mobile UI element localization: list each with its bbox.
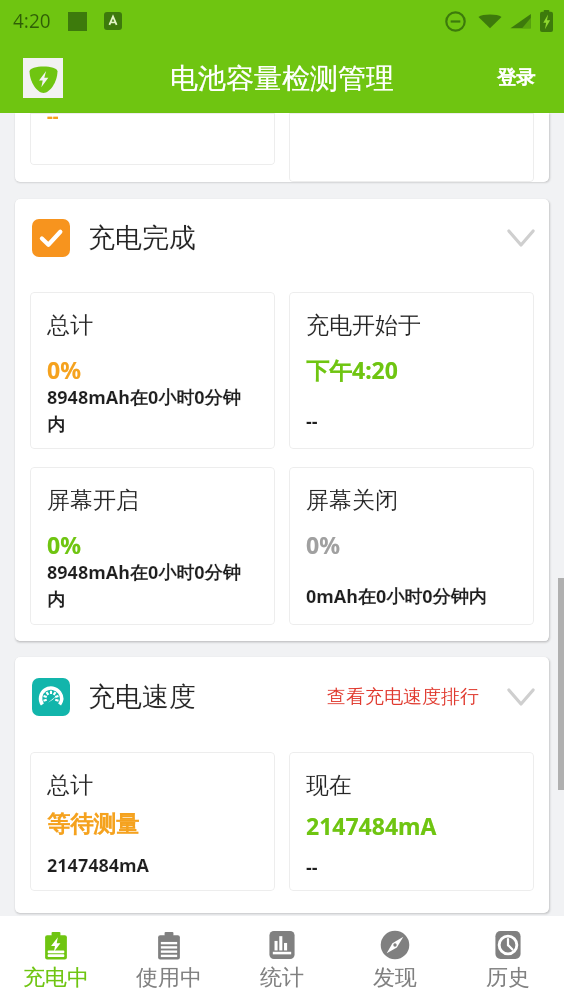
staticText: 0% [47,354,81,385]
button[interactable]: 统计 [225,916,338,1004]
staticText: 0mAh在0小时0分钟内 [306,584,487,609]
staticText: 登录 [497,66,535,90]
staticText: 现在 [306,771,352,800]
button[interactable]: 收起 [505,222,537,254]
button[interactable]: 充电中 [0,916,112,1004]
staticText: 0% [47,529,81,560]
staticText: 总计 [47,311,93,340]
staticText: 充电开始于 [306,311,421,340]
button[interactable]: 发现 [338,916,451,1004]
staticText: -- [306,409,318,434]
staticText: 4:20 [13,8,51,34]
button[interactable]: 总计 [30,292,275,449]
staticText: 屏幕关闭 [306,486,398,515]
button[interactable]: 登录 [477,56,564,100]
staticText: -- [306,855,318,880]
staticText: 总计 [47,771,93,800]
button[interactable]: 收起 [505,681,537,713]
button[interactable]: -- [30,113,275,165]
button[interactable]: 屏幕开启 [30,467,275,625]
staticText: 充电速度 [88,680,196,714]
staticText: 历史 [486,964,530,992]
staticText: 2147484mA [306,810,437,841]
button[interactable]: 使用中 [112,916,225,1004]
button[interactable]: 屏幕关闭 [289,467,534,625]
staticText: 等待测量 [47,810,139,839]
staticText: 2147484mA [47,853,150,878]
staticText: 充电中 [23,964,89,992]
staticText: 使用中 [136,964,202,992]
staticText: 电池容量检测管理 [170,61,394,96]
staticText: 查看充电速度排行 [327,685,479,709]
staticText: 发现 [373,964,417,992]
staticText: 8948mAh在0小时0分钟内 [47,385,252,437]
button[interactable]: 历史 [451,916,564,1004]
staticText: 下午4:20 [306,354,398,385]
button[interactable]: 充电开始于 [289,292,534,449]
button[interactable]: 查看充电速度排行 [323,679,483,715]
button[interactable]: 应用图标 [23,58,63,98]
staticText: 8948mAh在0小时0分钟内 [47,560,252,612]
button[interactable]: 现在 [289,752,534,891]
button[interactable]: 充电速度 [15,657,549,736]
staticText: 0% [306,529,340,560]
staticText: -- [47,113,59,129]
button[interactable] [289,113,534,182]
button[interactable]: 总计 [30,752,275,891]
button[interactable]: 充电完成 [15,199,549,276]
staticText: 屏幕开启 [47,486,139,515]
staticText: 充电完成 [88,221,196,255]
staticText: 统计 [260,964,304,992]
